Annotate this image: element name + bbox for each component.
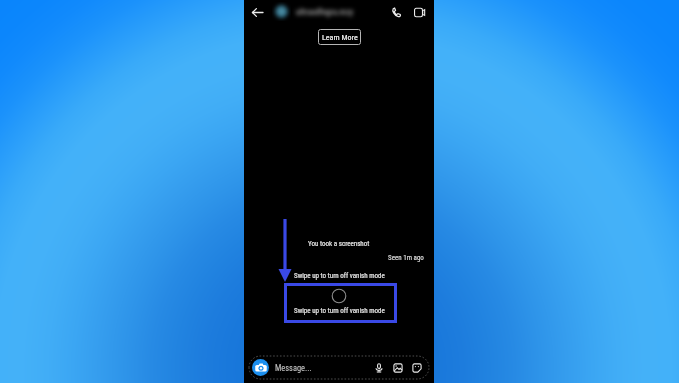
- button[interactable]: Camera: [252, 359, 269, 376]
- button[interactable]: Back: [248, 3, 266, 21]
- staticText: Swipe up to turn off vanish mode: [294, 272, 385, 280]
- staticText: Seen 1m ago: [388, 254, 424, 262]
- staticText: ultraxdfegra.mzy: [296, 7, 354, 17]
- button[interactable]: Learn More: [318, 29, 361, 45]
- button[interactable]: Gallery: [391, 361, 405, 375]
- button[interactable]: Audio call: [387, 3, 405, 21]
- button[interactable]: Stickers: [410, 361, 424, 375]
- staticText: Message...: [275, 363, 312, 373]
- staticText: Swipe up to turn off vanish mode: [294, 307, 385, 315]
- staticText: You took a screenshot: [308, 240, 370, 248]
- button[interactable]: Voice message: [372, 361, 386, 375]
- staticText: Learn More: [322, 33, 358, 42]
- button[interactable]: Video call: [410, 3, 428, 21]
